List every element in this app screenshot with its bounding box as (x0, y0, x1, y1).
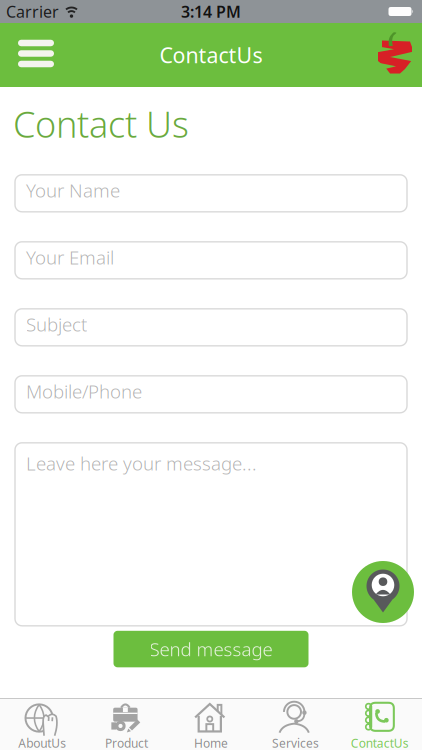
staticText: Carrier (6, 1, 59, 22)
staticText: Home (194, 735, 228, 750)
staticText: Mobile/Phone (26, 379, 142, 404)
staticText: Your Name (26, 178, 120, 203)
staticText: Product (105, 735, 148, 750)
staticText: Services (272, 735, 319, 750)
button[interactable]: Product (84, 699, 169, 749)
button[interactable]: Leave here your message (15, 443, 407, 626)
button[interactable]: Services (253, 699, 338, 749)
staticText: Contact Us (13, 100, 189, 148)
staticText: Subject (26, 312, 87, 337)
button[interactable]: Mobile/Phone (15, 376, 407, 413)
button[interactable]: ContactUs (338, 699, 422, 749)
button[interactable]: Support (352, 561, 414, 623)
staticText: Send message (149, 637, 272, 661)
staticText: ContactUs (351, 735, 409, 750)
staticText: ContactUs (159, 41, 262, 69)
button[interactable]: Home (169, 699, 253, 749)
button[interactable]: Your Name (15, 175, 407, 212)
button[interactable]: Send message (113, 631, 308, 667)
button[interactable]: Subject (15, 309, 407, 346)
staticText: Your Email (26, 245, 114, 270)
staticText: 3:14 PM (181, 1, 241, 22)
staticText: AboutUs (18, 735, 66, 750)
button[interactable]: AboutUs (0, 699, 84, 749)
staticText: Leave here your message... (26, 451, 257, 476)
button[interactable]: Your Email (15, 242, 407, 279)
button[interactable]: Menu (0, 40, 54, 70)
